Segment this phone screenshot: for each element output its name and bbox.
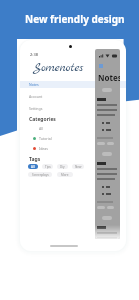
staticText: 2:38: [30, 52, 38, 57]
staticText: More: [61, 173, 69, 177]
button[interactable]: Screenplays: [28, 172, 52, 177]
staticText: New: [75, 165, 82, 169]
button[interactable]: Diy: [57, 164, 68, 169]
staticText: Settings: [29, 106, 43, 111]
staticText: All: [39, 126, 44, 131]
staticText: Tips: [45, 165, 51, 169]
button[interactable]: More: [57, 172, 73, 177]
button[interactable]: All: [28, 164, 38, 169]
staticText: Notes: [29, 82, 39, 87]
staticText: Diy: [60, 165, 65, 169]
staticText: Tutorial: [39, 136, 52, 141]
button[interactable]: New: [72, 164, 84, 169]
staticText: Somenotes: [33, 60, 84, 76]
staticText: Screenplays: [32, 173, 49, 177]
staticText: All: [31, 165, 35, 169]
staticText: New friendly design: [25, 12, 125, 26]
staticText: Account: [29, 94, 43, 99]
button[interactable]: Settings: [20, 104, 126, 112]
staticText: Ideas: [39, 146, 48, 151]
button[interactable]: Notes: [20, 81, 126, 88]
button[interactable]: Tips: [42, 164, 53, 169]
staticText: Categories: [29, 116, 56, 123]
staticText: Notes: [98, 72, 120, 83]
staticText: Tags: [29, 156, 41, 163]
button[interactable]: Account: [20, 92, 126, 100]
